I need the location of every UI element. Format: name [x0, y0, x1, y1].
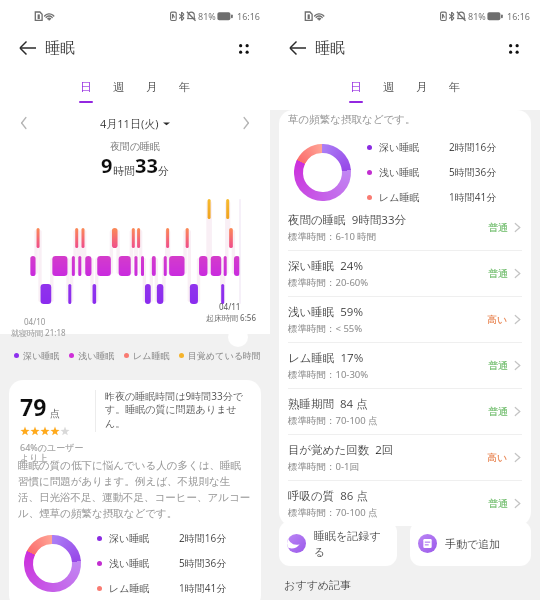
staticText: 64%のユーザーより上	[20, 441, 84, 464]
staticText: 目が覚めた回数 2回	[288, 442, 394, 458]
staticText: 高い	[487, 313, 508, 326]
staticText: 79	[20, 391, 47, 422]
staticText: 日	[350, 80, 362, 94]
staticText: 浅い睡眠	[379, 166, 449, 179]
staticText: 時間	[113, 164, 135, 178]
button[interactable]: 夜間の睡眠 9時間33分	[279, 205, 531, 250]
button[interactable]: More options	[230, 35, 256, 61]
button[interactable]: 4月11日(火)	[100, 116, 170, 131]
staticText: 高い	[487, 451, 508, 464]
button[interactable]: More options	[500, 35, 526, 61]
staticText: 標準時間：0-1回	[288, 460, 359, 473]
staticText: 睡眠	[45, 39, 75, 58]
button[interactable]: Previous day	[12, 111, 36, 135]
button[interactable]: 月	[405, 68, 438, 110]
staticText: 睡眠	[315, 39, 345, 58]
staticText: 標準時間：< 55%	[288, 322, 363, 335]
staticText: 週	[113, 80, 125, 94]
button[interactable]: 深い睡眠 24%	[279, 251, 531, 296]
staticText: 標準時間：70-100 点	[288, 506, 378, 519]
staticText: 月	[146, 80, 158, 94]
staticText: 深い睡眠 24%	[288, 258, 363, 274]
staticText: レム睡眠 17%	[288, 350, 364, 366]
staticText: 81%	[198, 10, 216, 22]
button[interactable]: Next day	[234, 111, 258, 135]
staticText: 2時間16分	[179, 531, 227, 545]
staticText: 5時間36分	[179, 556, 227, 570]
button[interactable]: 79	[9, 380, 261, 600]
staticText: 81%	[468, 10, 486, 22]
staticText: 深い睡眠	[109, 532, 179, 545]
staticText: 週	[383, 80, 395, 94]
button[interactable]: 年	[168, 68, 201, 110]
staticText: 年	[179, 80, 191, 94]
button[interactable]: 手動で追加	[410, 521, 531, 566]
staticText: レム睡眠	[133, 350, 170, 361]
staticText: 16:16	[237, 10, 261, 22]
staticText: 就寝時間 21:18	[11, 327, 66, 338]
staticText: 睡眠を記録する	[314, 529, 389, 559]
staticText: 16:16	[507, 10, 531, 22]
button[interactable]: 目が覚めた回数 2回	[279, 435, 531, 480]
staticText: 浅い睡眠	[78, 350, 115, 361]
staticText: 昨夜の睡眠時間は9時間33分です。睡眠の質に問題ありません。	[105, 389, 245, 430]
button[interactable]: Back	[284, 34, 312, 62]
staticText: 熟睡期間 84 点	[288, 396, 368, 412]
staticText: 草の頻繁な摂取などです。	[288, 113, 416, 126]
staticText: 標準時間：6-10 時間	[288, 230, 377, 243]
staticText: 普通	[488, 267, 508, 280]
staticText: おすすめ記事	[284, 578, 352, 592]
staticText: 標準時間：10-30%	[288, 368, 369, 381]
staticText: 04/10	[24, 316, 46, 327]
button[interactable]: 日	[339, 68, 372, 110]
staticText: 標準時間：20-60%	[288, 276, 369, 289]
staticText: レム睡眠	[379, 191, 449, 204]
staticText: 目覚めている時間	[188, 350, 261, 361]
staticText: 呼吸の質 86 点	[288, 488, 368, 504]
staticText: 深い睡眠	[379, 141, 449, 154]
staticText: 04/11	[219, 301, 241, 312]
staticText: 1時間41分	[449, 190, 497, 204]
staticText: 普通	[488, 359, 508, 372]
staticText: 深い睡眠	[23, 350, 60, 361]
button[interactable]: 熟睡期間 84 点	[279, 389, 531, 434]
staticText: 9	[101, 152, 113, 179]
button[interactable]: Back	[14, 34, 42, 62]
staticText: 2時間16分	[449, 140, 497, 154]
staticText: 4月11日(火)	[100, 116, 159, 131]
button[interactable]: 睡眠を記録する	[279, 521, 397, 566]
staticText: 夜間の睡眠	[0, 140, 270, 153]
staticText: 普通	[488, 221, 508, 234]
staticText: 浅い睡眠 59%	[288, 304, 363, 320]
staticText: 月	[416, 80, 428, 94]
staticText: レム睡眠	[109, 582, 179, 595]
button[interactable]: 週	[372, 68, 405, 110]
staticText: 点	[50, 407, 60, 420]
button[interactable]: 月	[135, 68, 168, 110]
staticText: 分	[158, 164, 169, 178]
staticText: 普通	[488, 497, 508, 510]
button[interactable]: 呼吸の質 86 点	[279, 481, 531, 526]
staticText: 普通	[488, 405, 508, 418]
button[interactable]: 日	[69, 68, 102, 110]
staticText: 33	[135, 152, 158, 179]
button[interactable]: 週	[102, 68, 135, 110]
staticText: 手動で追加	[445, 537, 501, 551]
button[interactable]: 年	[438, 68, 471, 110]
staticText: 年	[449, 80, 461, 94]
staticText: 夜間の睡眠 9時間33分	[288, 212, 406, 228]
staticText: 1時間41分	[179, 581, 227, 595]
button[interactable]: 浅い睡眠 59%	[279, 297, 531, 342]
staticText: 睡眠の質の低下に悩んでいる人の多くは、睡眠習慣に問題があります。例えば、不規則な…	[18, 459, 251, 520]
staticText: 日	[80, 80, 92, 94]
staticText: 標準時間：70-100 点	[288, 414, 378, 427]
staticText: 起床時間 6:56	[206, 312, 256, 323]
staticText: 5時間36分	[449, 165, 497, 179]
staticText: 浅い睡眠	[109, 557, 179, 570]
button[interactable]: レム睡眠 17%	[279, 343, 531, 388]
